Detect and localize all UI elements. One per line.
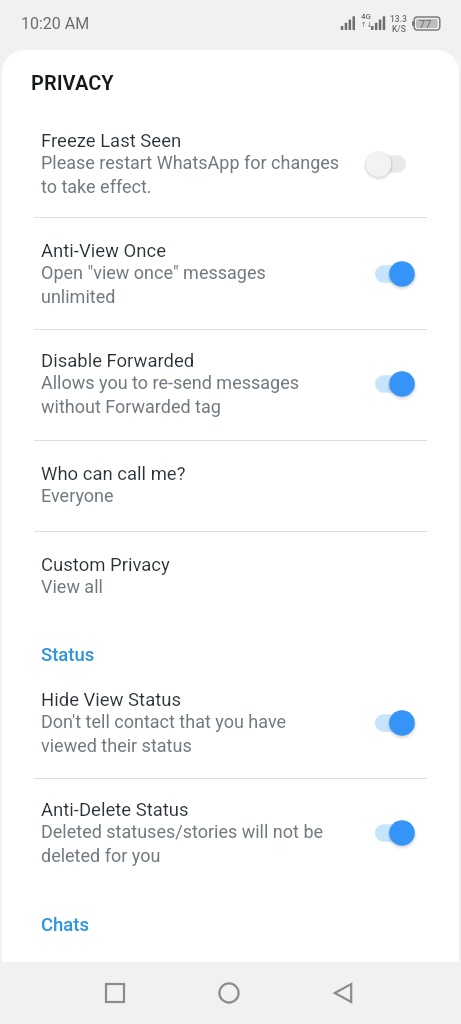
button[interactable]: Toggle on <box>373 708 419 738</box>
staticText: Everyone <box>41 485 114 506</box>
staticText: View all <box>41 576 103 597</box>
button[interactable]: Anti-Delete Status <box>2 779 459 866</box>
staticText: Don't tell contact that you have viewed … <box>41 711 287 756</box>
button[interactable]: Freeze Last Seen <box>2 94 459 217</box>
staticText: 4G <box>361 12 371 21</box>
staticText: Please restart WhatsApp for changes to t… <box>41 152 340 197</box>
staticText: 77 <box>419 18 432 31</box>
button[interactable]: Toggle off <box>373 149 419 179</box>
button[interactable]: Home <box>205 969 253 1017</box>
button[interactable]: Hide View Status <box>2 666 459 778</box>
staticText: Open "view once" messages unlimited <box>41 262 266 307</box>
staticText: Allows you to re-send messages without F… <box>41 372 300 417</box>
staticText: Custom Privacy <box>41 554 170 576</box>
staticText: ↑↓ <box>361 21 373 29</box>
staticText: Deleted statuses/stories will not be del… <box>41 821 324 866</box>
staticText: Status <box>41 644 95 666</box>
staticText: Disable Forwarded <box>41 350 195 372</box>
button[interactable]: Disable Forwarded <box>2 330 459 440</box>
button[interactable]: Toggle on <box>373 818 419 848</box>
staticText: PRIVACY <box>31 71 114 94</box>
staticText: Hide View Status <box>41 689 182 711</box>
button[interactable]: Toggle on <box>373 369 419 399</box>
staticText: Anti-View Once <box>41 240 166 262</box>
button[interactable]: Who can call me? <box>2 441 459 531</box>
button[interactable]: Custom Privacy <box>2 532 459 597</box>
staticText: 10:20 AM <box>21 14 90 33</box>
button[interactable]: Anti-View Once <box>2 218 459 329</box>
staticText: 13.3 <box>390 14 407 24</box>
button[interactable]: Recent apps <box>91 969 139 1017</box>
staticText: Chats <box>41 914 90 936</box>
staticText: Freeze Last Seen <box>41 130 182 152</box>
button[interactable]: Toggle on <box>373 259 419 289</box>
staticText: Who can call me? <box>41 463 186 485</box>
button[interactable]: Back <box>319 969 367 1017</box>
staticText: K/S <box>392 24 406 34</box>
staticText: Anti-Delete Status <box>41 799 189 821</box>
